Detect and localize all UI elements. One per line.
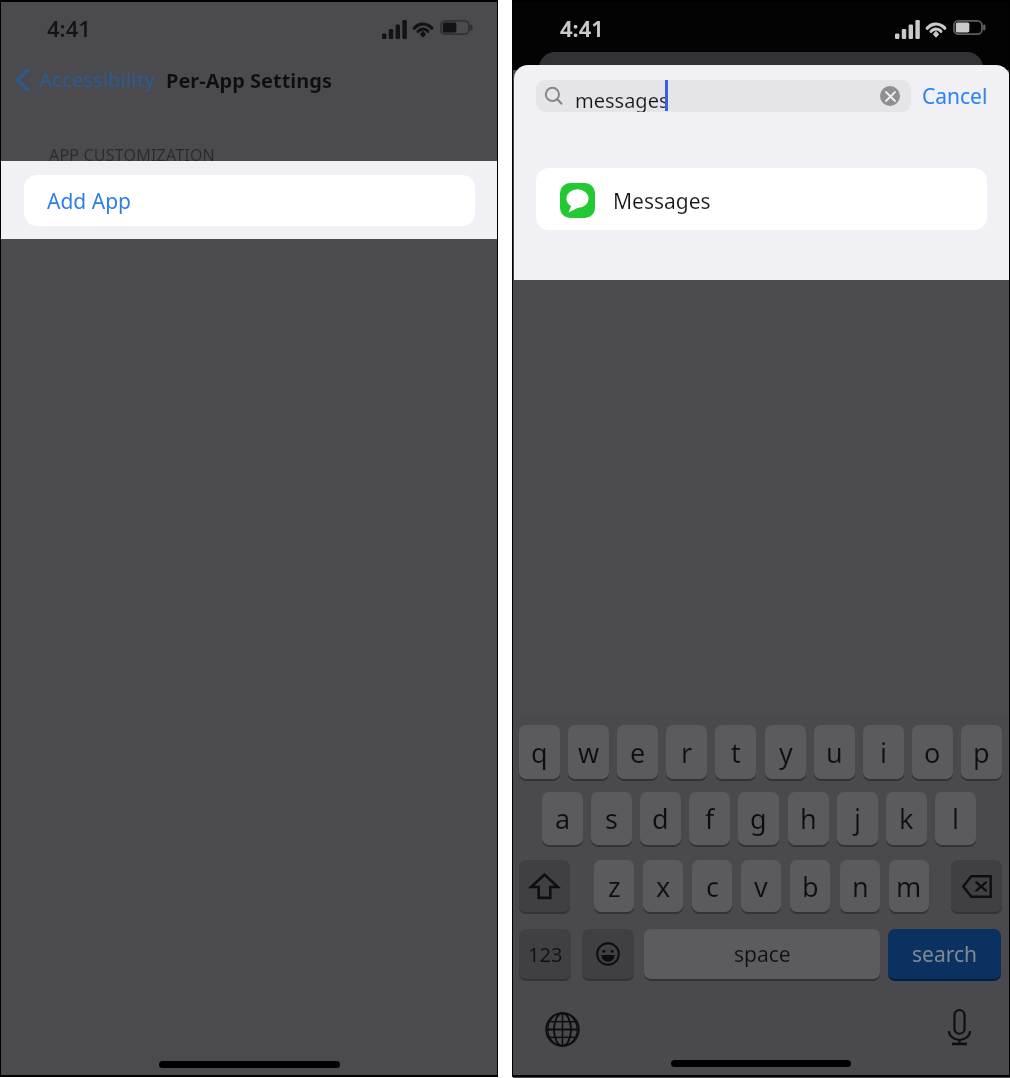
staticText: p xyxy=(973,734,990,771)
button[interactable]: p xyxy=(961,725,1002,779)
button[interactable]: i xyxy=(863,725,904,779)
staticText: w xyxy=(578,734,600,771)
button[interactable]: z xyxy=(594,860,634,912)
staticText: APP CUSTOMIZATION xyxy=(49,144,215,166)
staticText: t xyxy=(731,734,741,771)
staticText: q xyxy=(531,734,548,771)
button[interactable]: messages xyxy=(536,80,911,112)
button[interactable]: x xyxy=(643,860,683,912)
staticText: k xyxy=(899,800,914,837)
staticText: d xyxy=(652,800,669,837)
staticText: f xyxy=(705,800,715,837)
button[interactable]: search xyxy=(888,929,1001,979)
button[interactable]: Dictate xyxy=(948,1009,971,1045)
staticText: 4:41 xyxy=(47,13,91,43)
staticText: g xyxy=(750,800,767,837)
button[interactable]: s xyxy=(591,792,632,845)
button[interactable]: Emoji xyxy=(582,929,634,979)
button[interactable]: v xyxy=(741,860,781,912)
button[interactable]: r xyxy=(666,725,707,779)
button[interactable]: Cancel xyxy=(922,82,988,111)
staticText: a xyxy=(555,800,571,837)
staticText: r xyxy=(681,734,693,771)
staticText: c xyxy=(706,868,719,905)
staticText: j xyxy=(854,800,861,837)
staticText: h xyxy=(800,800,817,837)
staticText: Add App xyxy=(47,187,131,216)
button[interactable]: e xyxy=(617,725,658,779)
staticText: Per-App Settings xyxy=(166,67,332,94)
button[interactable]: j xyxy=(837,792,878,845)
button[interactable]: o xyxy=(912,725,953,779)
staticText: search xyxy=(912,940,977,969)
button[interactable]: c xyxy=(692,860,732,912)
button[interactable]: Accessibility xyxy=(39,66,155,93)
button[interactable]: d xyxy=(640,792,681,845)
button[interactable]: y xyxy=(765,725,806,779)
button[interactable]: Numbers xyxy=(519,929,571,979)
staticText: s xyxy=(605,800,618,837)
staticText: e xyxy=(630,734,646,771)
staticText: v xyxy=(754,868,768,905)
button[interactable]: f xyxy=(689,792,730,845)
button[interactable]: b xyxy=(790,860,830,912)
button[interactable]: m xyxy=(889,860,929,912)
button[interactable]: h xyxy=(788,792,829,845)
button[interactable]: n xyxy=(840,860,880,912)
button[interactable]: Clear search xyxy=(880,86,900,106)
staticText: y xyxy=(779,734,793,771)
staticText: b xyxy=(802,868,819,905)
staticText: i xyxy=(880,734,887,771)
button[interactable]: g xyxy=(738,792,779,845)
staticText: space xyxy=(734,940,791,969)
staticText: 4:41 xyxy=(560,13,604,43)
button[interactable]: Backspace xyxy=(951,860,1002,912)
button[interactable]: space xyxy=(644,929,880,979)
staticText: l xyxy=(952,800,959,837)
button[interactable]: Messages xyxy=(536,168,987,230)
staticText: m xyxy=(896,868,922,905)
button[interactable]: Add App xyxy=(24,175,475,226)
button[interactable]: k xyxy=(886,792,927,845)
staticText: Messages xyxy=(613,187,711,216)
staticText: 123 xyxy=(528,941,563,968)
button[interactable]: q xyxy=(519,725,560,779)
button[interactable]: Back xyxy=(15,68,30,92)
staticText: messages xyxy=(575,87,669,112)
staticText: x xyxy=(656,868,671,905)
button[interactable]: Shift xyxy=(519,860,570,912)
staticText: u xyxy=(826,734,843,771)
button[interactable]: u xyxy=(814,725,855,779)
staticText: o xyxy=(924,734,941,771)
staticText: z xyxy=(608,868,621,905)
staticText: n xyxy=(852,868,869,905)
button[interactable]: w xyxy=(568,725,609,779)
button[interactable]: a xyxy=(542,792,583,845)
button[interactable]: Change keyboard xyxy=(545,1012,580,1047)
button[interactable]: t xyxy=(715,725,756,779)
button[interactable]: l xyxy=(935,792,976,845)
